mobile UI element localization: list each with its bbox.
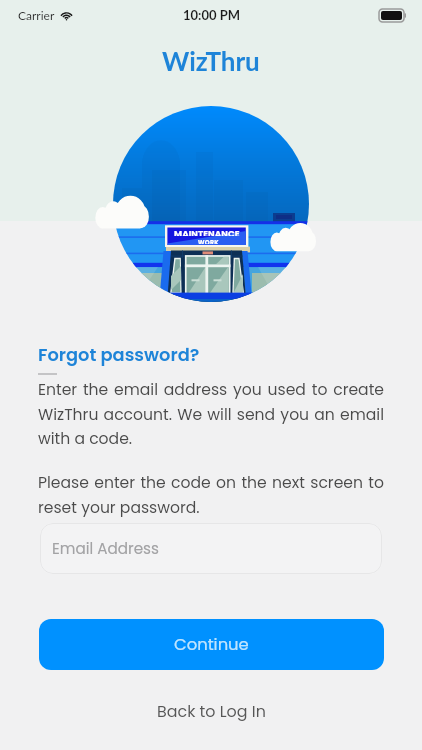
- staticText: Back to Log In: [157, 700, 266, 722]
- staticText: 10:00 PM: [183, 7, 240, 23]
- staticText: Enter the email address you used to crea…: [38, 379, 384, 449]
- button[interactable]: Continue: [39, 619, 384, 670]
- staticText: Please enter the code on the next screen…: [38, 472, 384, 518]
- staticText: Continue: [174, 633, 249, 656]
- staticText: WizThru: [162, 45, 260, 76]
- staticText: Email Address: [52, 538, 159, 559]
- staticText: MAINTENANCE: [174, 228, 240, 236]
- button[interactable]: Email Address: [40, 523, 382, 574]
- staticText: Forgot password?: [38, 342, 200, 367]
- button[interactable]: Back to Log In: [0, 696, 422, 726]
- staticText: WORK: [198, 238, 219, 244]
- staticText: Carrier: [18, 8, 55, 22]
